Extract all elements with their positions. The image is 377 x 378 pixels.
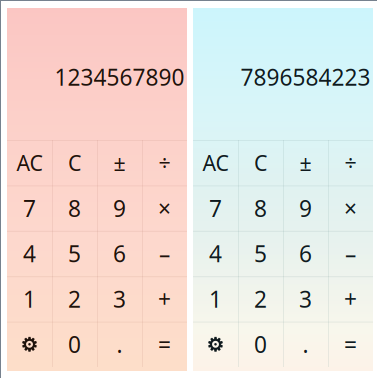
button[interactable]: 0 (238, 322, 283, 367)
staticText: 1 (209, 284, 222, 314)
button[interactable]: 2 (238, 276, 283, 322)
button[interactable]: AC (193, 140, 238, 185)
button[interactable]: = (142, 322, 187, 367)
button[interactable]: . (97, 322, 142, 367)
staticText: 8 (68, 193, 81, 223)
button[interactable]: 0 (52, 322, 97, 367)
staticText: 9 (299, 193, 312, 223)
button[interactable]: ÷ (328, 140, 373, 185)
button[interactable]: 3 (97, 276, 142, 322)
staticText: × (344, 193, 357, 223)
staticText: 6 (299, 238, 312, 268)
button[interactable]: 6 (283, 231, 328, 276)
staticText: 3 (113, 284, 126, 314)
button[interactable]: – (328, 231, 373, 276)
button[interactable]: 7 (193, 185, 238, 231)
button[interactable]: C (238, 140, 283, 185)
staticText: 4 (23, 238, 36, 268)
staticText: 7896584223 (240, 62, 370, 92)
button[interactable]: 8 (238, 185, 283, 231)
staticText: 5 (254, 238, 267, 268)
button[interactable]: ± (283, 140, 328, 185)
staticText: AC (202, 148, 228, 177)
staticText: ± (299, 148, 311, 177)
button[interactable]: 4 (7, 231, 52, 276)
staticText: C (254, 148, 267, 177)
button[interactable]: Settings (193, 322, 238, 367)
button[interactable]: Settings (7, 322, 52, 367)
staticText: . (302, 329, 308, 359)
button[interactable]: C (52, 140, 97, 185)
button[interactable]: 1 (193, 276, 238, 322)
button[interactable]: ÷ (142, 140, 187, 185)
button[interactable]: = (328, 322, 373, 367)
staticText: 1 (23, 284, 36, 314)
button[interactable]: ± (97, 140, 142, 185)
button[interactable]: 7 (7, 185, 52, 231)
staticText: ÷ (158, 148, 170, 177)
staticText: 2 (68, 284, 81, 314)
staticText: 2 (254, 284, 267, 314)
staticText: 3 (299, 284, 312, 314)
button[interactable]: . (283, 322, 328, 367)
staticText: 7 (209, 193, 222, 223)
staticText: 6 (113, 238, 126, 268)
staticText: = (158, 329, 171, 359)
button[interactable]: 9 (283, 185, 328, 231)
button[interactable]: × (142, 185, 187, 231)
button[interactable]: 4 (193, 231, 238, 276)
button[interactable]: 2 (52, 276, 97, 322)
staticText: ÷ (344, 148, 356, 177)
staticText: + (344, 284, 357, 314)
staticText: AC (16, 148, 42, 177)
button[interactable]: + (328, 276, 373, 322)
button[interactable]: × (328, 185, 373, 231)
button[interactable]: AC (7, 140, 52, 185)
staticText: ± (113, 148, 125, 177)
button[interactable]: 1 (7, 276, 52, 322)
staticText: 5 (68, 238, 81, 268)
staticText: 9 (113, 193, 126, 223)
staticText: 1234567890 (54, 62, 184, 92)
staticText: . (116, 329, 122, 359)
staticText: + (158, 284, 171, 314)
staticText: – (159, 238, 170, 268)
staticText: × (158, 193, 171, 223)
button[interactable]: 8 (52, 185, 97, 231)
button[interactable]: – (142, 231, 187, 276)
button[interactable]: + (142, 276, 187, 322)
staticText: 8 (254, 193, 267, 223)
staticText: C (68, 148, 81, 177)
staticText: 4 (209, 238, 222, 268)
button[interactable]: 5 (238, 231, 283, 276)
button[interactable]: 3 (283, 276, 328, 322)
button[interactable]: 5 (52, 231, 97, 276)
staticText: 7 (23, 193, 36, 223)
staticText: – (345, 238, 356, 268)
staticText: = (344, 329, 357, 359)
button[interactable]: 6 (97, 231, 142, 276)
staticText: 0 (68, 329, 81, 359)
staticText: 0 (254, 329, 267, 359)
button[interactable]: 9 (97, 185, 142, 231)
